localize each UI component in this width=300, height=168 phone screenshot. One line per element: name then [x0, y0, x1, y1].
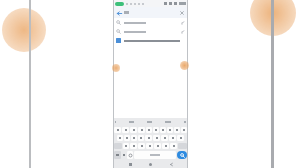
button[interactable]: [153, 127, 159, 133]
button[interactable]: [153, 135, 160, 141]
button[interactable]: [138, 127, 145, 133]
button[interactable]: [124, 135, 130, 141]
button[interactable]: [177, 135, 184, 141]
button[interactable]: [123, 143, 129, 149]
button[interactable]: Recents: [127, 161, 134, 168]
button[interactable]: Search: [177, 151, 187, 159]
button[interactable]: [181, 127, 187, 133]
button[interactable]: [130, 127, 137, 133]
button[interactable]: [162, 143, 169, 149]
button[interactable]: Comma: [122, 151, 126, 159]
button[interactable]: [113, 36, 188, 45]
button[interactable]: [122, 127, 129, 133]
button[interactable]: [113, 18, 188, 27]
button[interactable]: Clear: [179, 10, 185, 16]
button[interactable]: [161, 135, 168, 141]
button[interactable]: [154, 143, 161, 149]
button[interactable]: Symbols: [114, 151, 121, 159]
button[interactable]: [146, 127, 152, 133]
button[interactable]: [130, 143, 137, 149]
button[interactable]: [138, 143, 145, 149]
button[interactable]: [131, 135, 137, 141]
button[interactable]: [117, 135, 123, 141]
button[interactable]: Home: [147, 161, 154, 168]
button[interactable]: [169, 135, 176, 141]
button[interactable]: [145, 135, 152, 141]
button[interactable]: Back: [168, 161, 175, 168]
button[interactable]: Emoji: [127, 151, 133, 159]
button[interactable]: [146, 143, 153, 149]
button[interactable]: Back: [113, 7, 188, 18]
button[interactable]: [113, 27, 188, 36]
button[interactable]: [170, 143, 177, 149]
button[interactable]: [138, 135, 144, 141]
button[interactable]: [174, 127, 180, 133]
button[interactable]: Space: [134, 151, 176, 159]
button[interactable]: [167, 127, 173, 133]
button[interactable]: [160, 127, 166, 133]
button[interactable]: [114, 127, 121, 133]
button[interactable]: Back: [116, 10, 122, 16]
